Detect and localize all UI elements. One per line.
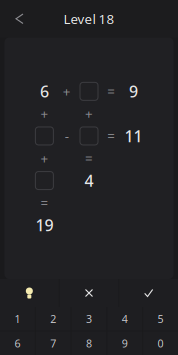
staticText: 19 (35, 214, 53, 236)
staticText: - (65, 127, 69, 145)
staticText: 3 (86, 312, 92, 326)
button[interactable]: 0 (143, 331, 178, 355)
button[interactable]: 6 (0, 331, 35, 355)
staticText: 6 (14, 336, 20, 350)
button[interactable]: 5 (143, 307, 178, 330)
staticText: 2 (50, 312, 56, 326)
button[interactable]: Hint (0, 279, 59, 307)
staticText: + (85, 105, 93, 122)
button[interactable]: 3 (72, 307, 106, 330)
staticText: 0 (158, 336, 164, 350)
button[interactable]: Check answer (119, 279, 178, 307)
staticText: 9 (129, 81, 138, 102)
staticText: + (40, 105, 48, 122)
staticText: = (85, 149, 93, 167)
button[interactable]: 7 (36, 331, 71, 355)
button[interactable]: 2 (36, 307, 71, 330)
staticText: 6 (40, 81, 49, 102)
button[interactable]: 9 (107, 331, 142, 355)
staticText: 1 (14, 312, 20, 326)
button[interactable]: Back (0, 4, 39, 34)
button[interactable]: 8 (72, 331, 106, 355)
button[interactable]: Empty cell (33, 169, 55, 192)
staticText: 9 (122, 336, 128, 350)
staticText: = (107, 82, 115, 100)
staticText: 5 (158, 312, 164, 326)
staticText: + (63, 82, 71, 100)
staticText: + (40, 149, 48, 167)
button[interactable]: 4 (107, 307, 142, 330)
staticText: 4 (84, 170, 93, 191)
staticText: 4 (122, 312, 128, 326)
button[interactable]: Empty cell (78, 125, 100, 147)
staticText: = (40, 194, 48, 212)
button[interactable]: Empty cell (33, 125, 55, 147)
staticText: Level 18 (63, 10, 114, 28)
button[interactable]: Empty cell (78, 80, 100, 102)
button[interactable]: 1 (0, 307, 35, 330)
staticText: 8 (86, 336, 92, 350)
button[interactable]: Clear (60, 279, 118, 307)
staticText: = (107, 127, 115, 145)
staticText: 11 (125, 125, 143, 146)
staticText: 7 (50, 336, 56, 350)
